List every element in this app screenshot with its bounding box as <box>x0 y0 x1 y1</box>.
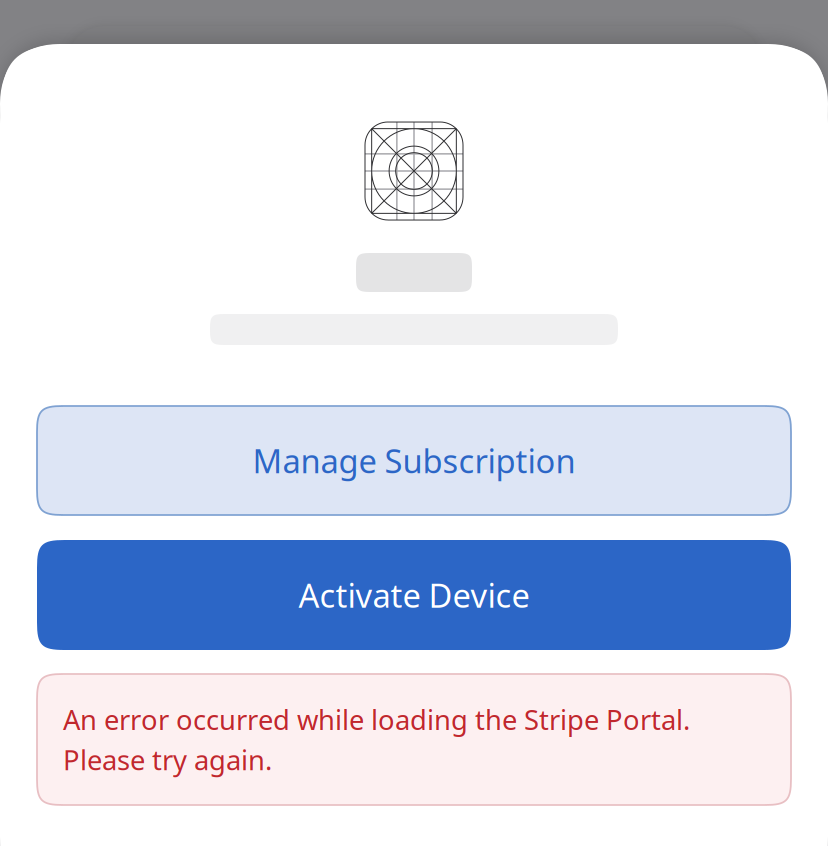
button[interactable]: Activate Device <box>37 540 791 650</box>
staticText: Activate Device <box>298 573 529 617</box>
staticText: An error occurred while loading the Stri… <box>63 701 690 738</box>
staticText: Please try again. <box>63 741 272 778</box>
staticText: Manage Subscription <box>252 438 575 483</box>
button[interactable]: Manage Subscription <box>37 406 791 515</box>
